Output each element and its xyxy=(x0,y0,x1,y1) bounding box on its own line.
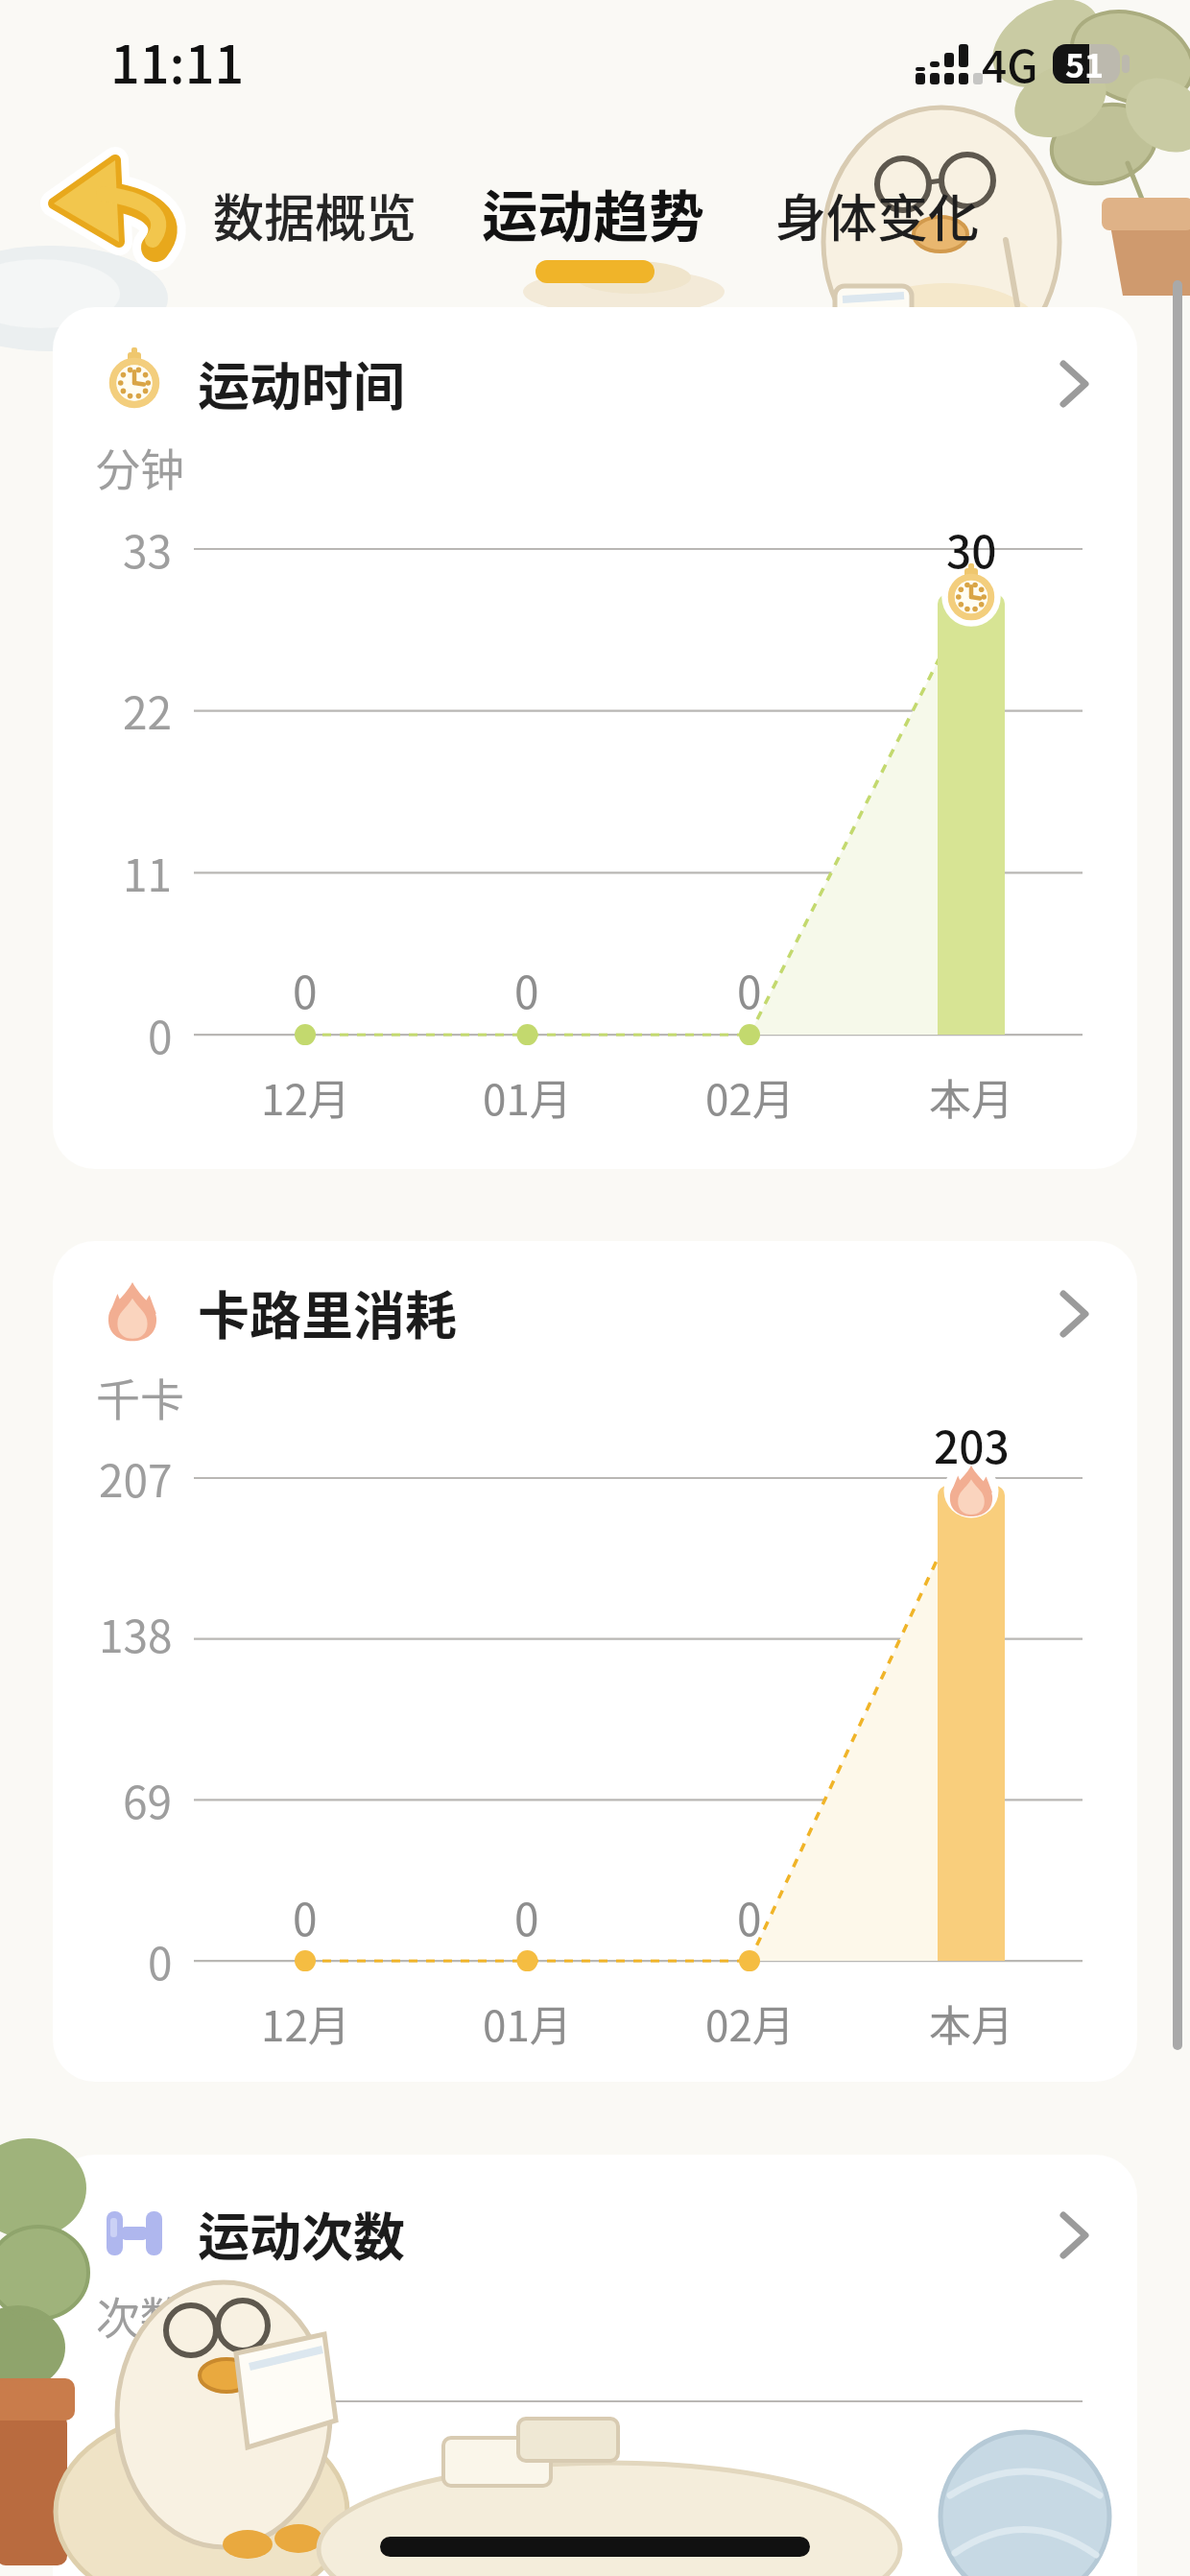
staticText: 本月 xyxy=(929,1066,1013,1128)
staticText: 30 xyxy=(946,517,997,582)
staticText: 33 xyxy=(123,517,173,582)
staticText: 02月 xyxy=(705,1066,795,1128)
staticText: 138 xyxy=(99,1602,173,1666)
staticText: 4G xyxy=(982,32,1038,96)
staticText: 0 xyxy=(737,1885,762,1949)
button[interactable] xyxy=(763,173,969,259)
staticText: 22 xyxy=(123,679,173,743)
staticText: 0 xyxy=(737,958,762,1022)
button[interactable] xyxy=(86,2191,1104,2278)
staticText: 01月 xyxy=(483,1992,572,2054)
button[interactable] xyxy=(86,1272,1104,1358)
button[interactable] xyxy=(38,144,182,269)
staticText: 运动次数 xyxy=(198,2196,405,2271)
staticText: 69 xyxy=(123,1768,173,1832)
staticText: 203 xyxy=(934,1413,1010,1477)
staticText: 0 xyxy=(148,1929,173,1993)
staticText: 12月 xyxy=(261,1992,350,2054)
staticText: 11:11 xyxy=(110,23,245,98)
staticText: 207 xyxy=(99,1446,173,1511)
staticText: 0 xyxy=(514,958,539,1022)
staticText: 身体变化 xyxy=(775,179,979,252)
staticText: 0 xyxy=(514,1885,539,1949)
staticText: 运动趋势 xyxy=(482,173,705,253)
button[interactable] xyxy=(86,341,1104,427)
staticText: 12月 xyxy=(261,1066,350,1128)
staticText: 次数 xyxy=(96,2283,184,2348)
staticText: 卡路里消耗 xyxy=(198,1275,457,1349)
staticText: 01月 xyxy=(483,1066,572,1128)
staticText: 0 xyxy=(148,1003,173,1067)
staticText: 0 xyxy=(293,958,318,1022)
staticText: 02月 xyxy=(705,1992,795,2054)
staticText: 运动时间 xyxy=(198,346,405,420)
staticText: 数据概览 xyxy=(213,179,416,252)
staticText: 0 xyxy=(293,1885,318,1949)
staticText: 本月 xyxy=(929,1992,1013,2054)
staticText: 分钟 xyxy=(96,435,184,499)
button[interactable] xyxy=(206,173,413,259)
staticText: 11 xyxy=(123,841,173,905)
staticText: 51 xyxy=(1065,40,1105,87)
staticText: 千卡 xyxy=(96,1365,184,1429)
button[interactable] xyxy=(461,173,691,259)
